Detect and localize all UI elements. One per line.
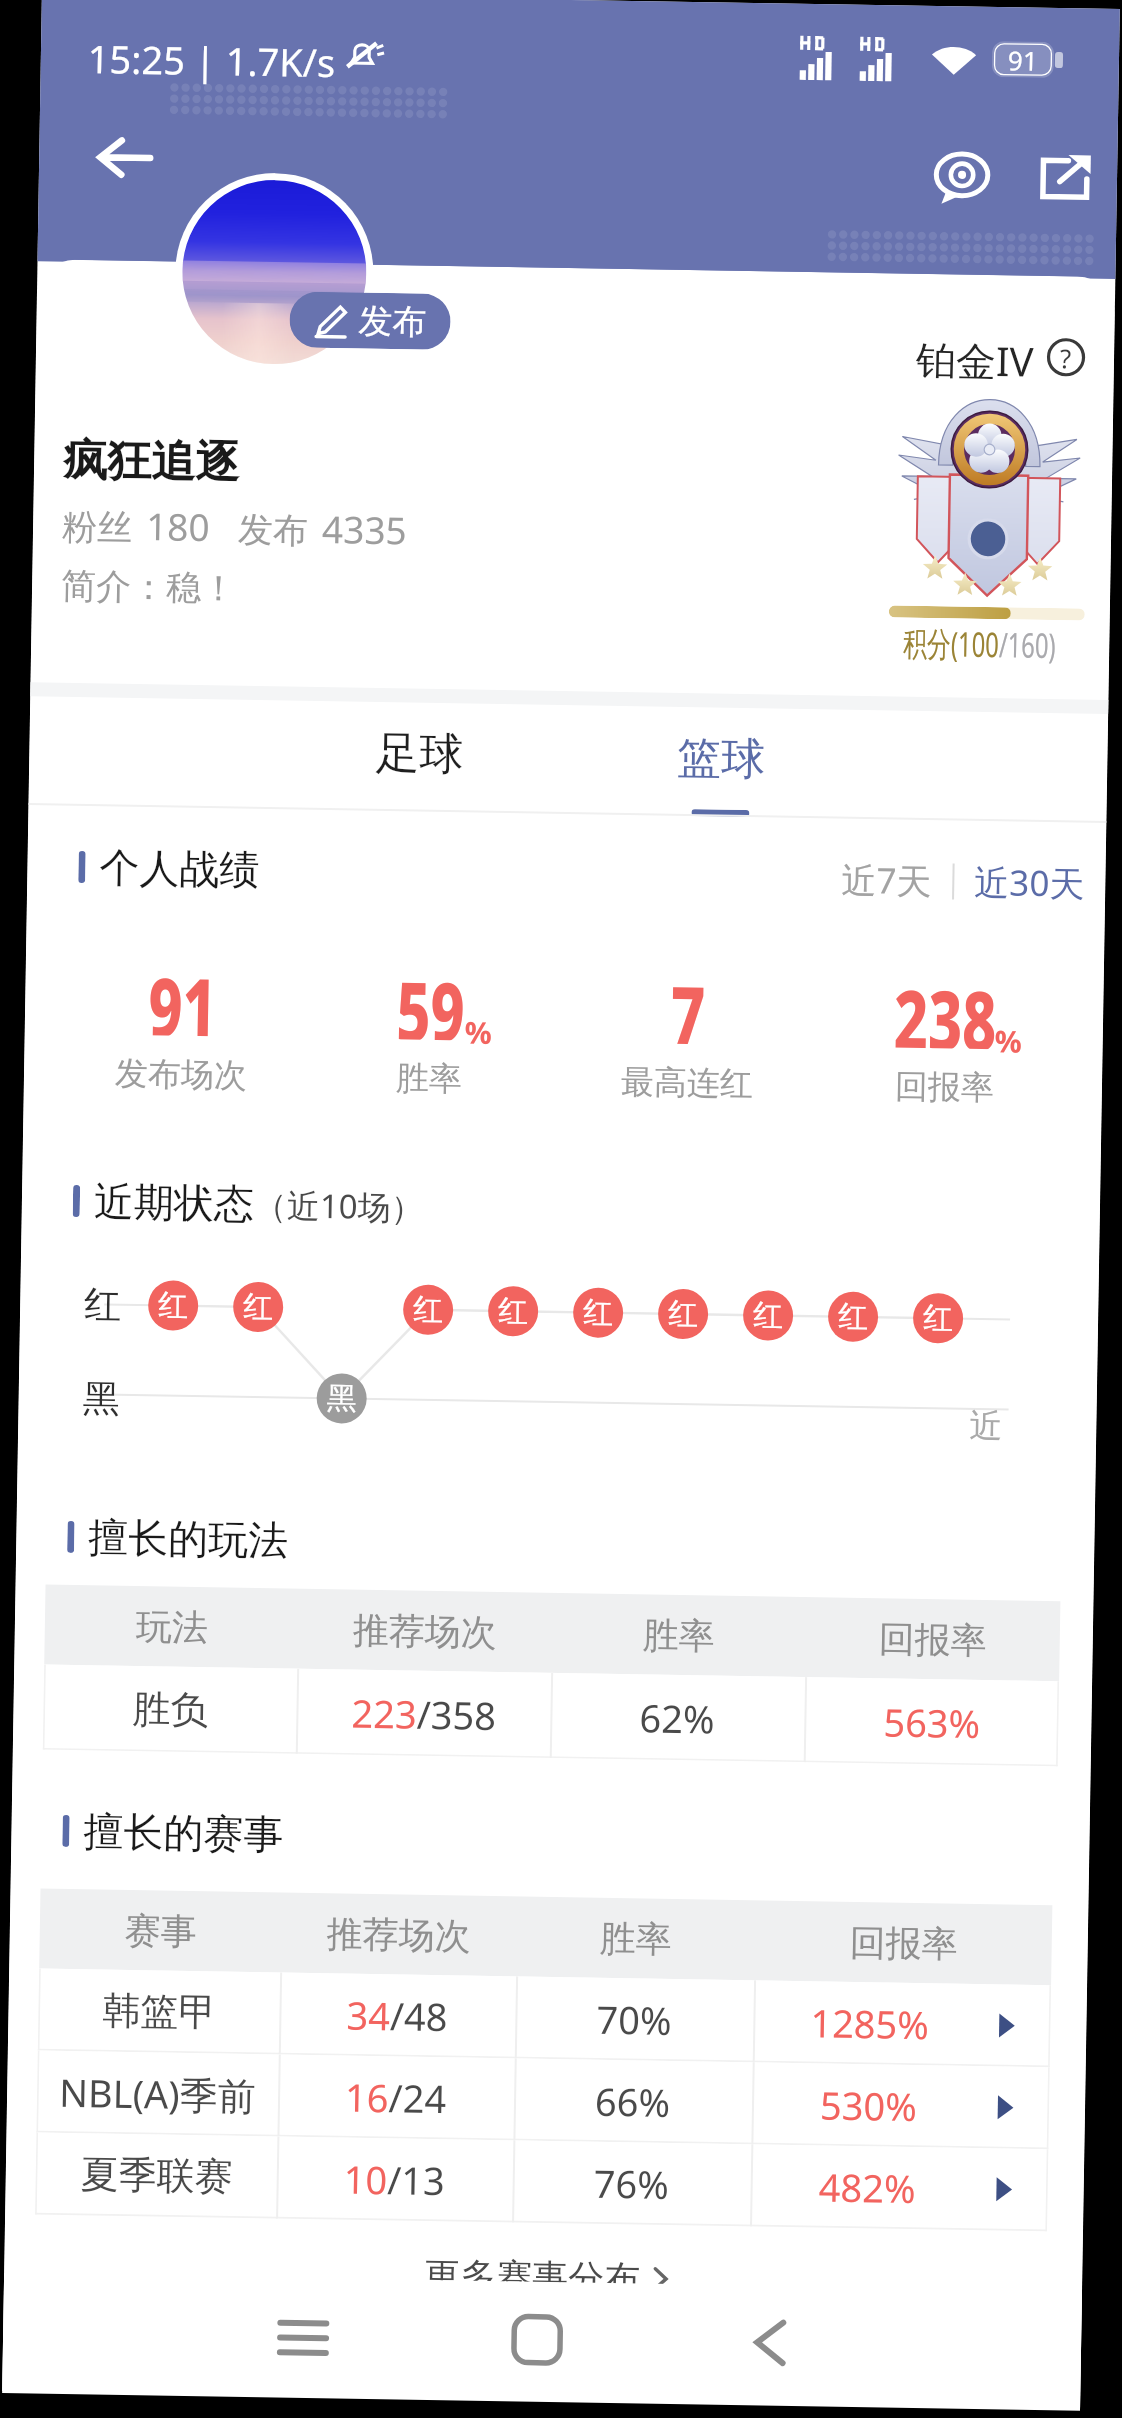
button[interactable]: Back [725,2298,815,2387]
button[interactable]: Recents [258,2293,348,2383]
staticText: 近30天 [974,858,1086,908]
staticText: 胜负 [132,1685,209,1734]
staticText: ? [1060,340,1072,375]
button[interactable]: Home [492,2295,582,2384]
staticText: 红 [243,1288,273,1326]
staticText: 回报率 [849,1920,958,1967]
staticText: 近期状态 [93,1176,254,1229]
staticText: 胜率 [396,1057,462,1100]
staticText: 简介：稳！ [61,564,236,610]
staticText: 238 [894,961,998,1049]
staticText: 红 [753,1296,783,1335]
staticText: 铂金IV [916,332,1034,380]
staticText: 最高连红 [621,1061,753,1105]
staticText: 发布 [358,299,427,344]
staticText: 62% [639,1691,716,1745]
button[interactable]: Messages [923,140,1001,217]
staticText: 1285% [810,1996,930,2050]
staticText: 15:25 | 1.7K/s [87,32,336,88]
staticText: 7 [670,958,706,1044]
staticText: 红 [923,1299,953,1337]
staticText: 70% [596,1993,673,2046]
staticText: 擅长的赛事 [83,1806,284,1859]
staticText: 足球 [375,726,464,782]
staticText: 16/24 [345,2070,447,2124]
staticText: 红 [413,1291,443,1329]
staticText: 夏季联赛 [80,2150,233,2201]
button[interactable]: 近30天 [966,852,1094,914]
staticText: 擅长的玩法 [88,1512,289,1565]
staticText: 59 [396,953,466,1040]
staticText: % [994,1020,1023,1062]
staticText: 红 [84,1281,122,1329]
button[interactable]: 韩篮甲 [38,1968,1051,2067]
button[interactable]: 足球 [328,701,510,813]
staticText: 66% [595,2075,671,2128]
button[interactable]: 近7天 [833,849,941,911]
staticText: 10/13 [343,2152,446,2206]
staticText: 发布 [238,508,308,553]
staticText: 黑 [82,1375,120,1423]
staticText: 回报率 [895,1065,994,1109]
staticText: 红 [838,1298,868,1336]
staticText: 180 [146,500,210,551]
button[interactable]: Back [83,123,166,192]
staticText: % [464,1011,493,1053]
staticText: 胜率 [642,1612,715,1659]
staticText: 推荐场次 [326,1911,471,1959]
staticText: NBL(A)季前 [59,2066,256,2121]
button[interactable]: Share [1028,140,1102,213]
staticText: 疯狂追逐 [63,433,240,490]
staticText: 4335 [322,503,407,554]
staticText: 近 [969,1405,1003,1447]
staticText: 玩法 [135,1604,208,1650]
staticText: 积分(100/160) [903,620,1056,668]
staticText: 563% [883,1695,981,1749]
staticText: 推荐场次 [352,1608,497,1655]
staticText: 91 [1008,42,1038,78]
staticText: 红 [583,1293,613,1332]
button[interactable]: 更多赛事分布 [416,2246,679,2308]
staticText: 红 [668,1295,698,1333]
button[interactable]: 夏季联赛 [35,2132,1048,2231]
staticText: 223/358 [351,1687,497,1741]
staticText: 发布场次 [115,1053,247,1097]
staticText: 更多赛事分布 [424,2253,640,2301]
staticText: 482% [818,2160,916,2214]
button[interactable]: NBL(A)季前 [36,2050,1050,2149]
staticText: 赛事 [124,1908,197,1954]
staticText: 91 [148,949,218,1036]
staticText: 530% [820,2078,917,2132]
staticText: 红 [158,1286,188,1325]
staticText: 个人战绩 [99,842,260,895]
staticText: 近7天 [841,856,933,905]
staticText: 胜率 [599,1916,672,1962]
staticText: 篮球 [677,731,766,787]
staticText: 粉丝 [62,505,132,550]
staticText: 回报率 [878,1616,987,1663]
button[interactable]: 篮球 [630,706,812,818]
button[interactable]: 铂金IV [916,332,1086,381]
staticText: 34/48 [346,1989,449,2042]
staticText: 76% [593,2157,670,2210]
staticText: （近10场） [253,1182,424,1230]
staticText: 红 [498,1292,528,1330]
button[interactable]: 发布 [289,291,451,350]
staticText: 韩篮甲 [102,1986,217,2036]
staticText: 黑 [326,1379,357,1418]
